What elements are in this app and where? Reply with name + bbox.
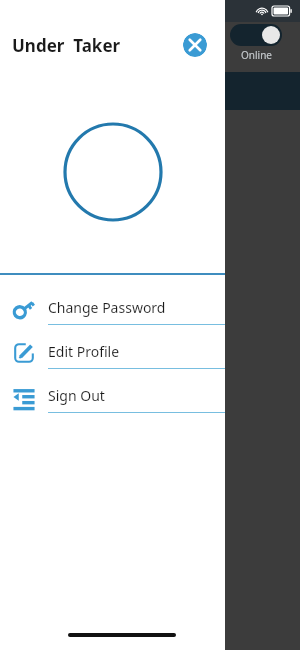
button[interactable]: Change Password <box>0 287 225 331</box>
staticText: Under Taker <box>12 34 121 57</box>
button[interactable]: Edit Profile <box>0 331 225 375</box>
staticText: Sign Out <box>48 386 105 405</box>
button[interactable]: Online toggle <box>230 24 282 46</box>
button[interactable]: Close <box>183 33 207 57</box>
staticText: Change Password <box>48 298 166 317</box>
staticText: Edit Profile <box>48 342 120 361</box>
staticText: Online <box>241 48 272 62</box>
button[interactable]: Sign Out <box>0 375 225 419</box>
